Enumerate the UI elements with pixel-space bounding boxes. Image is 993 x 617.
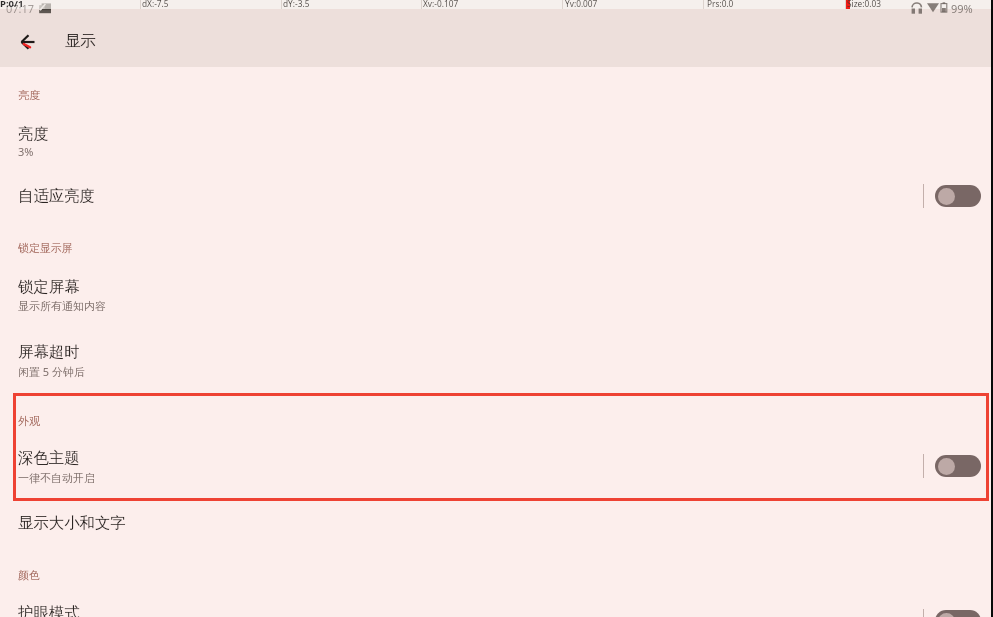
staticText: 护眼模式 [18, 603, 80, 617]
staticText: 亮度 [18, 124, 49, 143]
button[interactable]: 深色主题 switch, off [935, 455, 981, 477]
staticText: 屏幕超时 [18, 342, 80, 361]
button[interactable]: 护眼模式 [0, 590, 993, 617]
staticText: 自适应亮度 [18, 186, 95, 205]
button[interactable]: 自适应亮度 [0, 174, 993, 218]
staticText: 显示大小和文字 [18, 513, 126, 532]
button[interactable]: 护眼模式 switch, off [935, 610, 981, 617]
staticText: dY:-3.5 [283, 0, 310, 9]
staticText: P:0/1 [0, 0, 24, 10]
staticText: Prs:0.0 [707, 0, 734, 9]
button[interactable]: 锁定屏幕 [0, 264, 993, 326]
button[interactable]: 显示大小和文字 [0, 501, 993, 545]
staticText: 闲置 5 分钟后 [18, 364, 86, 379]
staticText: Xv:-0.107 [423, 0, 459, 9]
staticText: 显示所有通知内容 [18, 299, 106, 313]
staticText: 深色主题 [18, 448, 80, 467]
button[interactable]: 亮度 [0, 110, 993, 172]
button[interactable]: 深色主题 [0, 436, 993, 498]
staticText: 07:17 [6, 1, 35, 16]
button[interactable]: 屏幕超时 [0, 329, 993, 391]
staticText: 外观 [18, 415, 40, 429]
staticText: 锁定屏幕 [18, 277, 80, 296]
staticText: 3% [18, 144, 34, 159]
staticText: Size:0.03 [847, 0, 881, 9]
staticText: 一律不自动开启 [18, 471, 95, 485]
staticText: 颜色 [18, 569, 40, 583]
staticText: 亮度 [18, 89, 40, 103]
staticText: 锁定显示屏 [18, 242, 73, 256]
staticText: 显示 [65, 31, 97, 51]
staticText: Yv:0.007 [565, 0, 598, 9]
button[interactable]: 自适应亮度 switch, off [935, 185, 981, 207]
staticText: 99% [951, 1, 973, 16]
staticText: dX:-7.5 [142, 0, 169, 9]
button[interactable]: Back [10, 24, 44, 58]
